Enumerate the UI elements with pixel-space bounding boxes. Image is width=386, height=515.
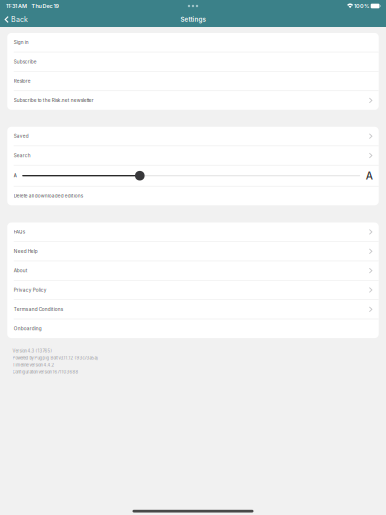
staticText: Timeline version 4.4.2	[13, 363, 55, 368]
staticText: Configuration version 1671103688	[13, 370, 79, 375]
button[interactable]: Saved	[7, 127, 379, 146]
staticText: Back	[11, 15, 28, 24]
button[interactable]: About	[7, 261, 379, 280]
staticText: Powered by Pugpig Bolt v3.11.12 (93c73a5…	[13, 356, 99, 361]
staticText: Version 4.3 (13765)	[13, 349, 53, 354]
staticText: Subscribe to the Risk.net newsletter	[14, 98, 94, 103]
staticText: 100%	[354, 3, 369, 9]
staticText: Privacy Policy	[14, 287, 47, 293]
staticText: A	[14, 173, 17, 178]
button[interactable]: Need Help	[7, 242, 379, 261]
staticText: A	[366, 170, 373, 182]
staticText: Saved	[14, 133, 29, 139]
button[interactable]: Search	[7, 146, 379, 165]
button[interactable]: Back	[0, 12, 32, 26]
button[interactable]: Sign in	[7, 33, 379, 52]
button[interactable]: Onboarding	[7, 319, 379, 338]
staticText: FAQs	[14, 229, 25, 235]
staticText: Thu Dec 19	[31, 3, 58, 9]
staticText: Terms and Conditions	[14, 306, 63, 312]
staticText: Search	[14, 153, 31, 158]
button[interactable]: Delete all downloaded editions	[7, 186, 379, 205]
staticText: Sign in	[14, 40, 29, 45]
staticText: Onboarding	[14, 326, 42, 331]
staticText: Need Help	[14, 248, 38, 254]
staticText: Delete all downloaded editions	[14, 193, 83, 199]
staticText: Restore	[14, 78, 31, 84]
staticText: Settings	[180, 16, 205, 23]
staticText: About	[14, 268, 28, 273]
button[interactable]: Subscribe to the Risk.net newsletter	[7, 91, 379, 110]
button[interactable]: FAQs	[7, 223, 379, 241]
staticText: 11:31 AM	[6, 3, 27, 9]
button[interactable]: Terms and Conditions	[7, 300, 379, 319]
button[interactable]: Restore	[7, 72, 379, 90]
staticText: Subscribe	[14, 59, 37, 64]
button[interactable]: Privacy Policy	[7, 281, 379, 299]
button[interactable]: Subscribe	[7, 52, 379, 71]
